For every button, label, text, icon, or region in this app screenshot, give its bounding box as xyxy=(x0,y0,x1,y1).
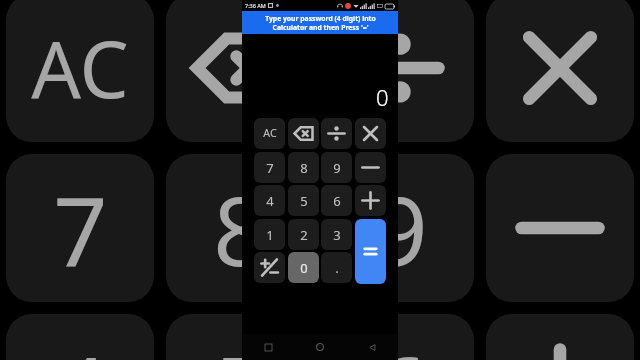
staticText: . xyxy=(335,259,339,277)
staticText: AC xyxy=(263,126,277,141)
staticText: 2 xyxy=(300,226,308,244)
staticText: 6 xyxy=(373,324,428,360)
button[interactable]: Minus xyxy=(355,152,386,183)
button[interactable]: 5 xyxy=(288,185,319,216)
button[interactable]: 1 xyxy=(254,219,285,250)
staticText: 5 xyxy=(300,192,308,210)
staticText: 4 xyxy=(53,324,108,360)
staticText: 7:36 AM xyxy=(245,2,266,9)
button[interactable]: Home xyxy=(294,334,346,360)
staticText: 3 xyxy=(333,226,341,244)
staticText: 1 xyxy=(266,226,274,244)
button[interactable]: AC xyxy=(254,118,285,149)
button[interactable]: . xyxy=(321,252,352,283)
button[interactable]: 2 xyxy=(288,219,319,250)
button[interactable]: Toggle sign xyxy=(254,252,285,283)
staticText: 8 xyxy=(300,159,308,177)
staticText: AC xyxy=(31,15,129,121)
button[interactable]: Recents xyxy=(242,334,294,360)
button[interactable]: 6 xyxy=(321,185,352,216)
staticText: 5 xyxy=(213,324,268,360)
staticText: 7 xyxy=(266,159,274,177)
button[interactable]: 7 xyxy=(254,152,285,183)
button[interactable]: 9 xyxy=(321,152,352,183)
staticText: 0 xyxy=(376,82,389,112)
staticText: 4 xyxy=(266,192,274,210)
button[interactable]: 0 xyxy=(288,252,319,283)
button[interactable]: 8 xyxy=(288,152,319,183)
button[interactable]: 3 xyxy=(321,219,352,250)
staticText: 9 xyxy=(333,159,341,177)
staticText: 0 xyxy=(300,259,308,277)
button[interactable]: Divide xyxy=(321,118,352,149)
staticText: 6 xyxy=(333,192,341,210)
staticText: 9 xyxy=(373,164,428,293)
staticText: Type your password (4 digit) into Calcul… xyxy=(265,14,376,32)
staticText: 8 xyxy=(213,164,268,293)
button[interactable]: Multiply xyxy=(355,118,386,149)
button[interactable]: 4 xyxy=(254,185,285,216)
button[interactable]: Back xyxy=(346,334,398,360)
button[interactable]: Backspace xyxy=(288,118,319,149)
button[interactable]: Type your password (4 digit) into Calcul… xyxy=(242,11,398,34)
button[interactable]: Equals xyxy=(355,219,386,284)
button[interactable]: Plus xyxy=(355,185,386,216)
staticText: 7 xyxy=(53,164,108,293)
